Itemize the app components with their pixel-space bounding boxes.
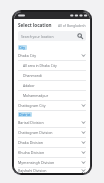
staticText: Dhaka City bbox=[18, 53, 37, 58]
staticText: City bbox=[19, 45, 26, 50]
button[interactable]: Chattogram City bbox=[18, 101, 86, 111]
button[interactable]: Adabor bbox=[18, 81, 86, 91]
staticText: All area in Dhaka City bbox=[23, 63, 57, 68]
other: Search bbox=[77, 33, 83, 39]
staticText: Khulna Division bbox=[18, 150, 45, 155]
staticText: Rajshahi Division bbox=[18, 168, 47, 173]
staticText: District bbox=[19, 112, 31, 117]
other: Expand bbox=[81, 53, 86, 58]
button[interactable]: Mohammadpur bbox=[18, 91, 86, 101]
staticText: Mohammadpur bbox=[23, 93, 49, 98]
other: Expand bbox=[81, 120, 86, 125]
button[interactable]: Dhanmondi bbox=[18, 71, 86, 81]
staticText: Dhanmondi bbox=[23, 73, 42, 78]
button[interactable]: Barisal Division bbox=[18, 118, 86, 128]
other: Expand bbox=[81, 150, 86, 155]
other: Expand bbox=[81, 140, 86, 145]
other: Expand bbox=[81, 103, 86, 108]
staticText: All of Bangladesh bbox=[58, 23, 86, 28]
staticText: Search your location bbox=[21, 34, 54, 39]
other: Expand bbox=[81, 160, 86, 165]
button[interactable]: All area in Dhaka City bbox=[18, 61, 86, 71]
staticText: Chattogram City bbox=[18, 103, 46, 108]
button[interactable]: Chattogram Division bbox=[18, 128, 86, 138]
button[interactable]: Search your location bbox=[18, 31, 86, 41]
staticText: Adabor bbox=[23, 83, 35, 88]
staticText: Select location bbox=[18, 22, 52, 28]
button[interactable]: Dhaka Division bbox=[18, 138, 86, 148]
button[interactable]: Dhaka City bbox=[18, 51, 86, 61]
button[interactable]: Mymensingh Division bbox=[18, 158, 86, 168]
button[interactable]: Rajshahi Division bbox=[18, 168, 86, 173]
staticText: Barisal Division bbox=[18, 120, 44, 125]
staticText: Dhaka Division bbox=[18, 140, 44, 145]
button[interactable]: Select location bbox=[18, 22, 86, 28]
staticText: Chattogram Division bbox=[18, 130, 53, 135]
other: Expand bbox=[81, 130, 86, 135]
staticText: Mymensingh Division bbox=[18, 160, 55, 165]
button[interactable]: Khulna Division bbox=[18, 148, 86, 158]
other: Expand bbox=[81, 168, 86, 173]
